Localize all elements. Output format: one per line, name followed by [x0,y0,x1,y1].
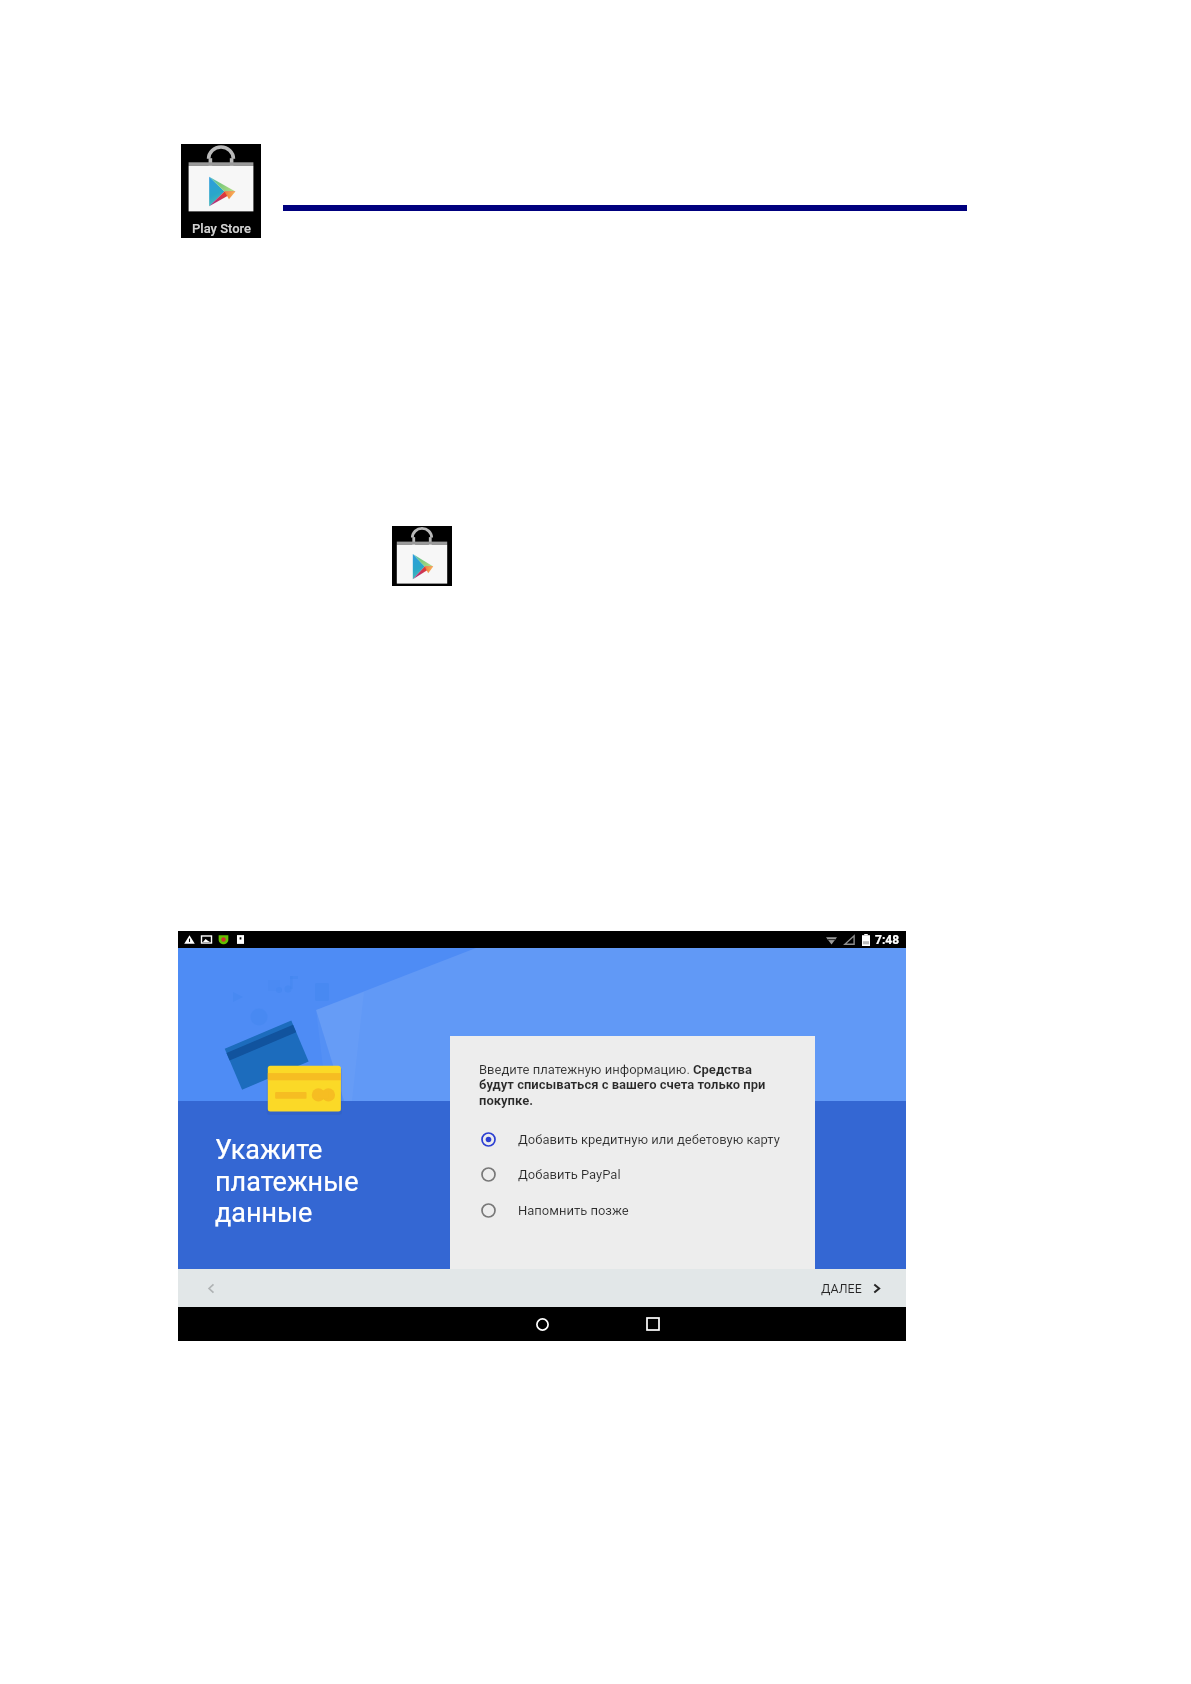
button[interactable]: Play Store [392,526,452,586]
staticText: Добавить кредитную или дебетовую карту [518,1132,780,1147]
button[interactable]: Play Store [181,144,261,238]
button[interactable]: Recent apps [638,1307,668,1341]
staticText: Play Store [192,221,251,236]
button[interactable]: Добавить кредитную или дебетовую карту [481,1125,780,1153]
button[interactable]: ДАЛЕЕ [821,1281,882,1296]
button[interactable]: Back [196,1273,226,1303]
staticText: Введите платежную информацию. Средства б… [479,1062,777,1109]
button[interactable]: Home [527,1307,557,1341]
staticText: ДАЛЕЕ [821,1281,862,1296]
button[interactable]: Напомнить позже [481,1196,629,1224]
button[interactable]: Добавить PayPal [481,1160,621,1188]
staticText: 7:48 [875,933,900,947]
staticText: Напомнить позже [518,1203,629,1218]
staticText: Укажите платежные данные [215,1134,359,1228]
staticText: Добавить PayPal [518,1167,621,1182]
